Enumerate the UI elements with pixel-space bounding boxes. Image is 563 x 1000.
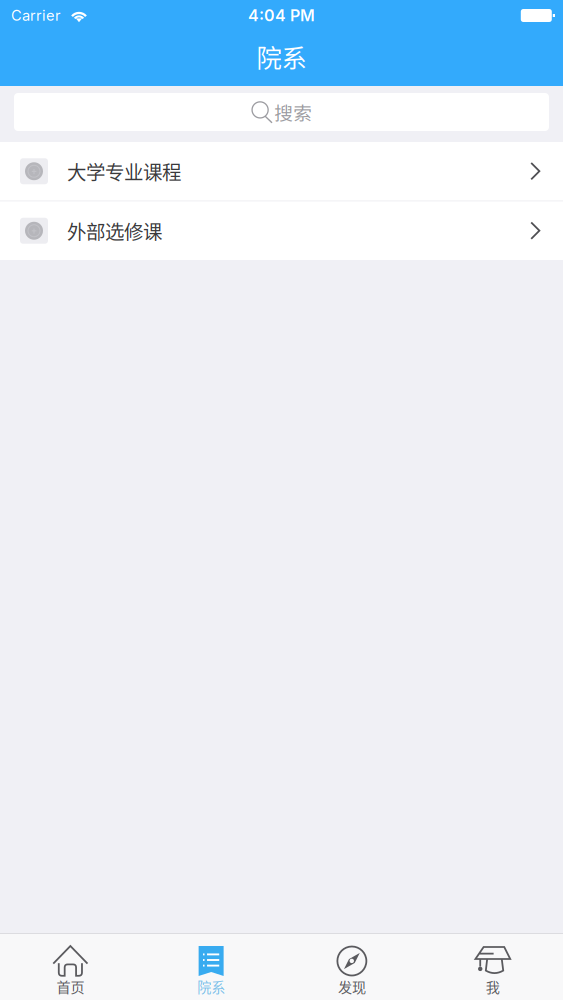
button[interactable]: 首页 (0, 934, 141, 1000)
button[interactable]: 大学专业课程 (0, 142, 563, 200)
button[interactable]: 我 (422, 934, 563, 1000)
staticText: 搜索 (274, 98, 312, 125)
staticText: 发现 (338, 976, 366, 996)
staticText: Carrier (11, 7, 61, 24)
staticText: 首页 (56, 976, 84, 996)
button[interactable]: 院系 (141, 934, 282, 1000)
button[interactable]: 搜索 (14, 93, 549, 131)
staticText: 院系 (197, 976, 225, 996)
staticText: 大学专业课程 (67, 157, 181, 185)
staticText: 4:04 PM (248, 6, 315, 25)
staticText: 外部选修课 (67, 217, 162, 245)
staticText: 院系 (256, 38, 306, 75)
button[interactable]: 发现 (281, 934, 422, 1000)
button[interactable]: 外部选修课 (0, 201, 563, 260)
staticText: 我 (486, 976, 500, 996)
